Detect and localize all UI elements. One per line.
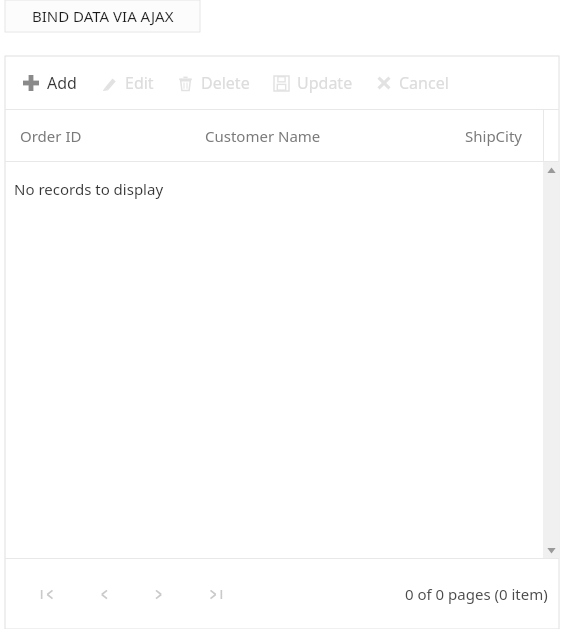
button[interactable]: Previous page [85,576,121,612]
staticText: BIND DATA VIA AJAX [32,6,174,26]
button[interactable]: Last page [197,576,233,612]
button[interactable]: Edit [83,56,160,110]
button[interactable]: Add [5,56,83,110]
staticText: Edit [125,72,154,94]
button[interactable]: Customer Name [205,110,365,162]
staticText: Update [297,72,353,94]
button[interactable]: Next page [141,576,177,612]
staticText: 0 of 0 pages (0 item) [405,584,548,604]
button[interactable]: BIND DATA VIA AJAX [5,0,200,32]
button[interactable]: First page [29,576,65,612]
button[interactable]: Scroll up [543,162,559,178]
staticText: Customer Name [205,126,321,146]
staticText: Delete [201,72,250,94]
button[interactable]: ShipCity [385,110,523,162]
staticText: Order ID [20,126,82,146]
button[interactable]: Order ID [20,110,185,162]
button[interactable]: Update [256,56,359,110]
button[interactable]: Delete [160,56,256,110]
staticText: Cancel [399,72,449,94]
staticText: ShipCity [465,126,523,146]
button[interactable]: Scroll down [543,542,559,558]
staticText: Add [47,72,77,94]
staticText: No records to display [14,179,164,199]
button[interactable]: Cancel [359,56,455,110]
